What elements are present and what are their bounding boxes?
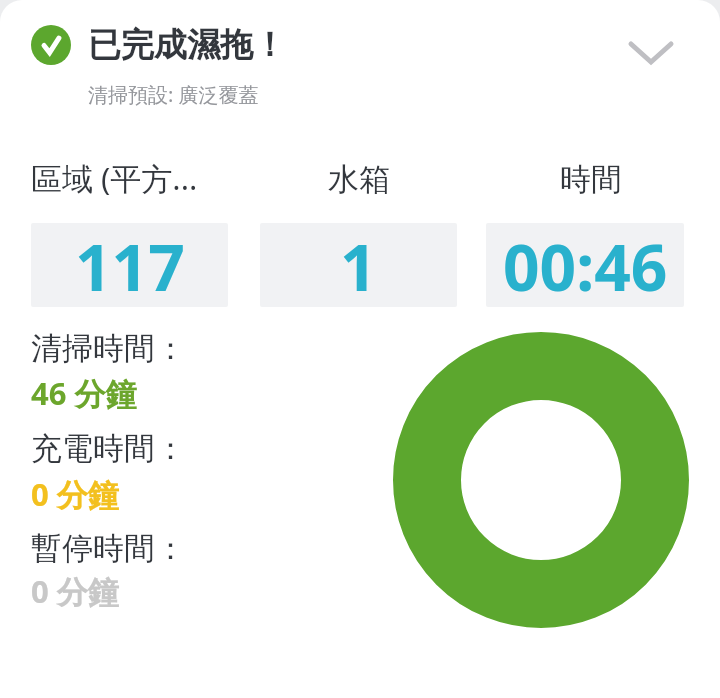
staticText: 區域 (平方... bbox=[31, 157, 198, 199]
staticText: 水箱 bbox=[328, 160, 390, 199]
staticText: 0 分鐘 bbox=[31, 473, 119, 515]
staticText: 117 bbox=[75, 223, 185, 307]
staticText: 00:46 bbox=[503, 223, 668, 307]
staticText: 清掃時間： bbox=[31, 329, 186, 368]
staticText: 時間 bbox=[560, 160, 622, 199]
button[interactable] bbox=[615, 30, 687, 78]
staticText: 充電時間： bbox=[31, 429, 186, 468]
staticText: 已完成濕拖！ bbox=[88, 24, 286, 66]
staticText: 1 bbox=[340, 223, 377, 307]
staticText: 0 分鐘 bbox=[31, 570, 119, 612]
staticText: 暫停時間： bbox=[31, 529, 186, 568]
staticText: 清掃預設: 廣泛覆蓋 bbox=[88, 81, 259, 108]
staticText: 46 分鐘 bbox=[31, 372, 137, 414]
